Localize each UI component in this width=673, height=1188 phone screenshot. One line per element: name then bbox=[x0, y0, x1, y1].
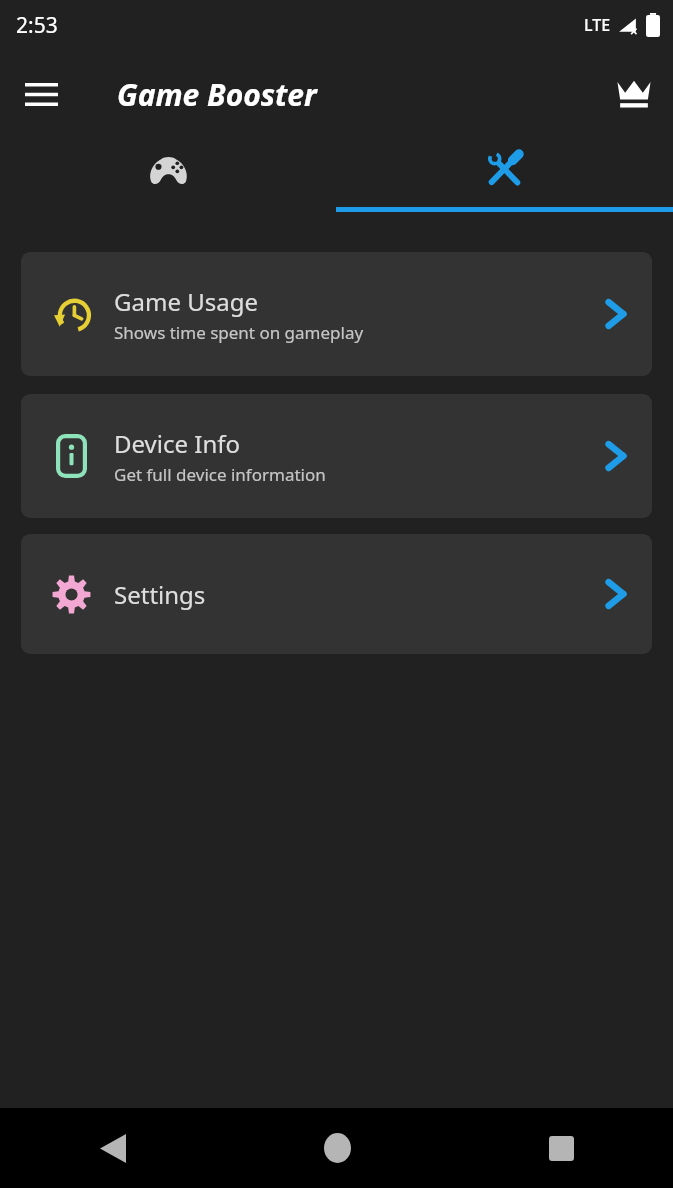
button[interactable]: Recent apps bbox=[449, 1108, 673, 1188]
button[interactable]: Tools tab bbox=[336, 138, 673, 212]
button[interactable]: Back bbox=[0, 1108, 225, 1188]
staticText: 2:53 bbox=[16, 11, 58, 40]
button[interactable]: Games tab bbox=[0, 138, 336, 212]
button[interactable]: Premium bbox=[607, 67, 661, 121]
staticText: LTE bbox=[584, 14, 611, 36]
button[interactable]: Device Info bbox=[21, 394, 652, 518]
staticText: Device Info bbox=[114, 427, 240, 460]
staticText: Settings bbox=[114, 578, 206, 611]
button[interactable]: Settings bbox=[21, 534, 652, 654]
staticText: Game Usage bbox=[114, 285, 258, 318]
button[interactable]: Home bbox=[225, 1108, 449, 1188]
staticText: Game Booster bbox=[117, 74, 317, 115]
button[interactable]: Menu bbox=[14, 67, 68, 121]
button[interactable]: Game Usage bbox=[21, 252, 652, 376]
staticText: Shows time spent on gameplay bbox=[114, 321, 364, 344]
staticText: Get full device information bbox=[114, 463, 326, 486]
